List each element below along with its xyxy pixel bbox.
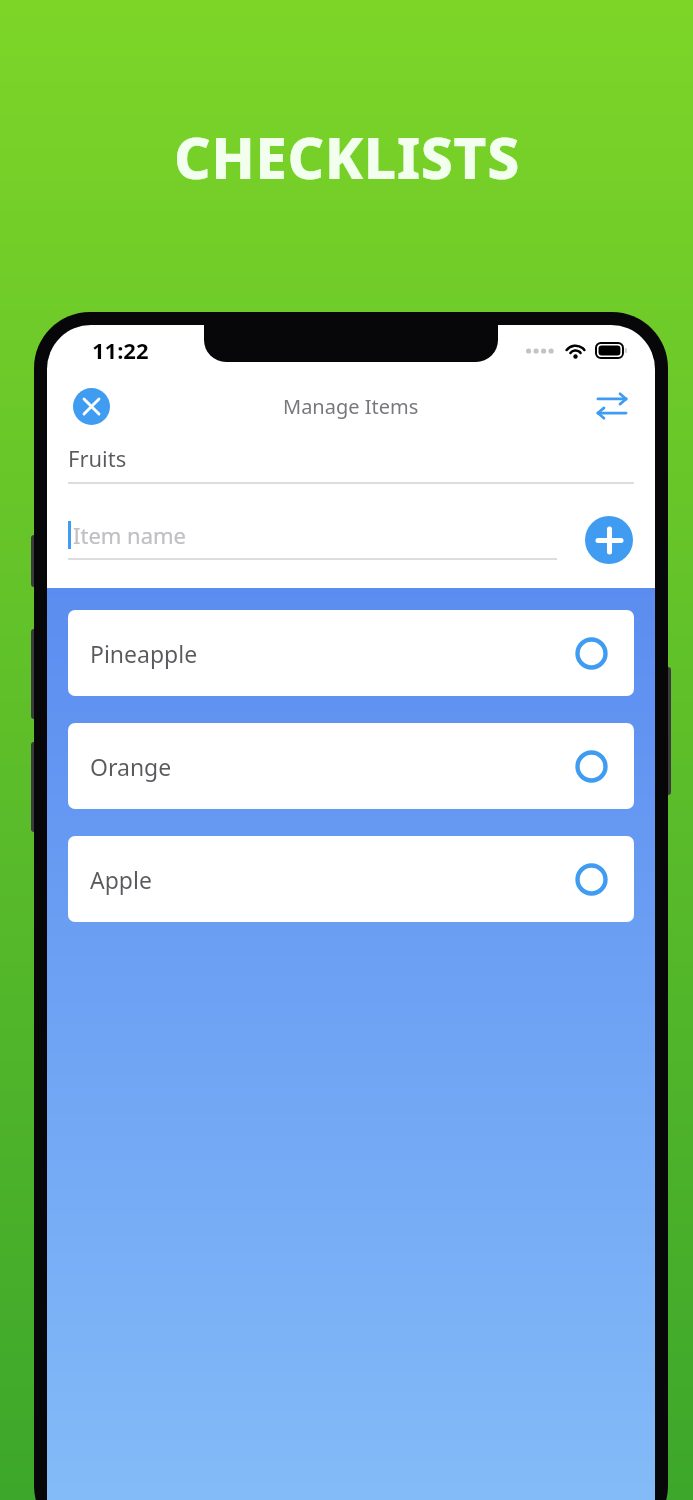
button[interactable]: Orange (68, 723, 634, 809)
button[interactable]: Reorder items (591, 385, 633, 427)
button[interactable]: Apple (68, 836, 634, 922)
staticText: Item name (73, 520, 187, 550)
button[interactable]: Close (73, 388, 110, 425)
staticText: Fruits (68, 443, 127, 473)
staticText: Apple (90, 864, 574, 895)
button[interactable]: Fruits (68, 443, 634, 484)
staticText: Orange (90, 751, 574, 782)
staticText: CHECKLISTS (174, 118, 520, 196)
staticText: Manage Items (283, 393, 419, 420)
button[interactable]: Pineapple (68, 610, 634, 696)
button[interactable]: Add item (585, 516, 633, 564)
button[interactable]: Item name (68, 520, 557, 560)
staticText: 11:22 (92, 335, 149, 365)
staticText: Pineapple (90, 638, 574, 669)
